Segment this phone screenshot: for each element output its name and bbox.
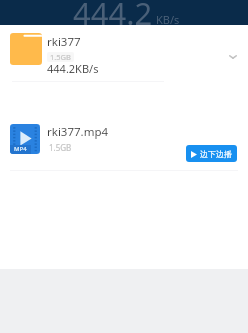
staticText: MP4 xyxy=(14,145,27,153)
staticText: 1.5GB xyxy=(50,52,71,62)
button[interactable]: rki377 xyxy=(0,25,248,81)
staticText: 边下边播 xyxy=(200,149,232,159)
staticText: rki377.mp4 xyxy=(47,124,109,140)
staticText: 1.5GB xyxy=(49,142,72,153)
button[interactable]: 边下边播 xyxy=(186,145,237,162)
staticText: KB/s xyxy=(156,12,180,27)
staticText: 444.2KB/s xyxy=(47,61,99,76)
staticText: 444.2 xyxy=(73,0,153,34)
button[interactable]: MP4 xyxy=(0,82,248,170)
button[interactable]: Expand xyxy=(222,46,244,68)
staticText: rki377 xyxy=(47,34,81,50)
